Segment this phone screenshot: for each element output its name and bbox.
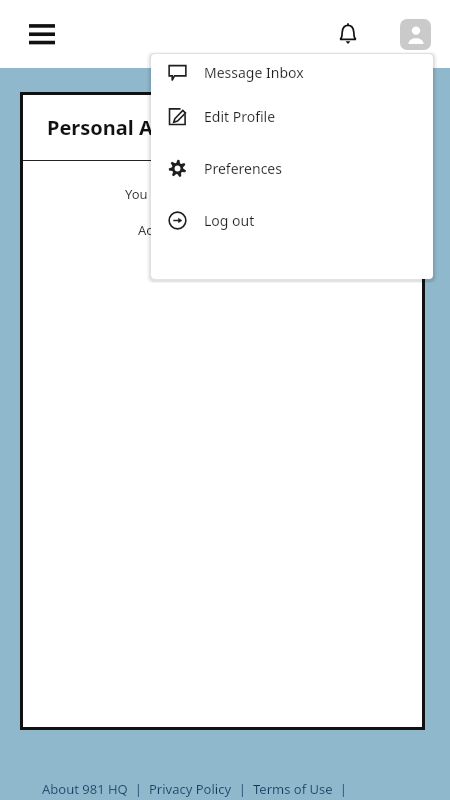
button[interactable]: Log out [151,194,433,246]
staticText: Preferences [204,159,282,178]
staticText: Message Inbox [204,63,304,82]
staticText: Log out [204,211,255,230]
staticText: Personal Area [47,114,186,141]
button[interactable]: Account [400,19,431,50]
staticText: | [232,780,253,798]
button[interactable]: Terms of Use [253,780,333,798]
staticText: Privacy Policy [149,780,232,798]
staticText: | [333,780,354,798]
staticText: About 981 HQ [42,780,128,798]
staticText: Add sessions to get started. [138,221,307,239]
staticText: Edit Profile [204,107,276,126]
button[interactable]: Preferences [151,142,433,194]
button[interactable]: Notifications [330,16,366,52]
button[interactable]: About 981 HQ [42,780,128,798]
staticText: | [128,780,149,798]
staticText: Terms of Use [253,780,333,798]
button[interactable]: Edit Profile [151,90,433,142]
staticText: You don't have any sessions yet. [125,185,321,203]
button[interactable]: Message Inbox [151,54,433,90]
button[interactable]: Privacy Policy [149,780,232,798]
button[interactable]: Menu [24,16,60,52]
